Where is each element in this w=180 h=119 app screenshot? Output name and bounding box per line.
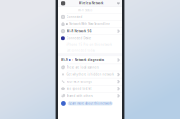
staticText: Wi-Fi	[61, 58, 68, 62]
staticText: Connected	[67, 15, 83, 19]
button[interactable]: Learn more about this network	[58, 99, 122, 108]
button[interactable]: Your Wi-Fi settings	[58, 78, 122, 85]
staticText: Network diagnostics	[75, 58, 104, 62]
button[interactable]: See speed test kit	[58, 85, 122, 92]
button[interactable]: Profile	[61, 1, 65, 5]
button[interactable]: Get why there is hidden network	[58, 71, 122, 78]
button[interactable]: Connected	[58, 14, 122, 20]
staticText: These are local scanners	[67, 66, 99, 69]
button[interactable]: Shared with others	[58, 92, 122, 99]
button[interactable]: Network With New Secondline	[58, 21, 122, 27]
staticText: Wi-Fi Network 5G	[67, 29, 92, 33]
button[interactable]: Wi-Fi	[58, 56, 122, 64]
staticText: Wireless Network	[79, 1, 104, 5]
staticText: Get why there is hidden network	[67, 73, 114, 76]
staticText: Learn more about this network	[69, 102, 111, 105]
button[interactable]: Menu	[117, 1, 120, 5]
staticText: See speed test kit	[67, 87, 92, 90]
staticText: Your Wi-Fi settings	[67, 80, 92, 83]
staticText: Connected Device	[67, 36, 92, 40]
button[interactable]: These are local scanners	[58, 64, 122, 71]
staticText: iPhone 15 Pro on this network	[67, 43, 112, 46]
staticText: Shared with others	[67, 94, 93, 98]
button[interactable]: Wi-Fi Network 5G	[58, 28, 122, 34]
staticText: Network With New Secondline	[69, 22, 110, 26]
staticText: Wi-Fi Status	[78, 8, 92, 12]
button[interactable]: Connected Device	[58, 35, 122, 53]
